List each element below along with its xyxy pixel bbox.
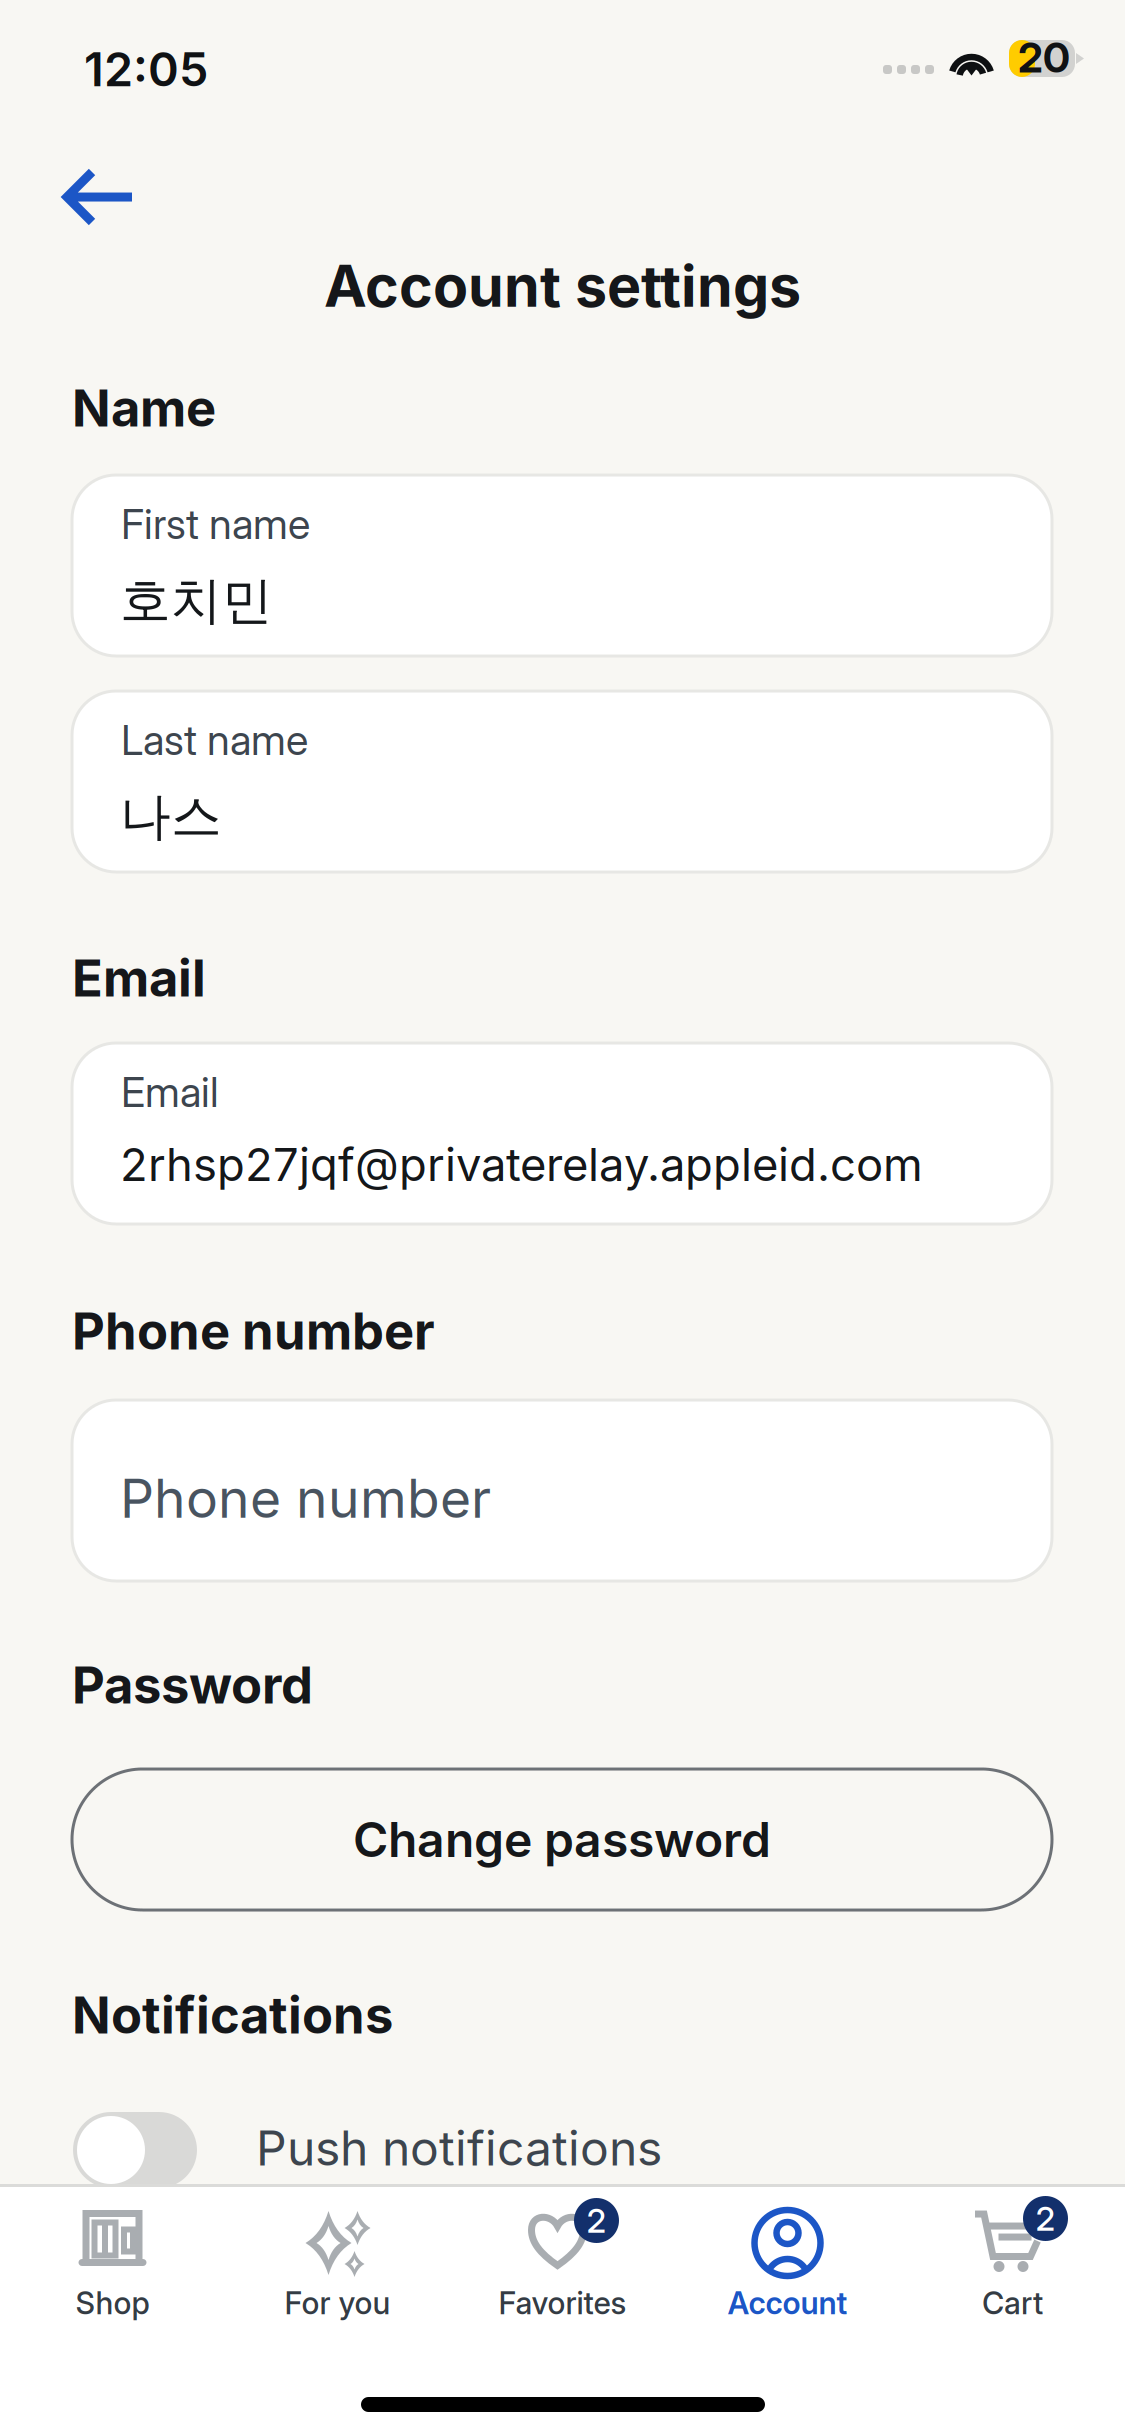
button[interactable]: Phone number bbox=[72, 1400, 1052, 1581]
staticText: 2 bbox=[1035, 2198, 1055, 2239]
staticText: 2rhsp27jqf@privaterelay.appleid.com bbox=[120, 1137, 923, 1192]
button[interactable]: Email bbox=[72, 1043, 1052, 1224]
button[interactable]: Last name bbox=[72, 691, 1052, 872]
staticText: 12:05 bbox=[84, 41, 208, 97]
button[interactable]: Account bbox=[675, 2202, 900, 2332]
staticText: Phone number bbox=[72, 1300, 435, 1362]
button[interactable]: Shop bbox=[0, 2202, 225, 2332]
staticText: 20 bbox=[1018, 32, 1070, 82]
staticText: Cart bbox=[982, 2284, 1043, 2321]
button[interactable]: For you bbox=[225, 2202, 450, 2332]
staticText: 2 bbox=[586, 2200, 606, 2241]
button[interactable]: First name bbox=[72, 475, 1052, 656]
staticText: Phone number bbox=[120, 1466, 491, 1530]
staticText: Last name bbox=[121, 715, 308, 765]
button[interactable]: Push notifications bbox=[73, 2112, 197, 2188]
button[interactable]: Change password bbox=[72, 1769, 1052, 1910]
staticText: First name bbox=[121, 499, 310, 549]
staticText: For you bbox=[284, 2284, 390, 2321]
button[interactable]: Back bbox=[37, 142, 162, 252]
staticText: 나스 bbox=[120, 785, 222, 849]
staticText: Favorites bbox=[498, 2284, 626, 2321]
staticText: Change password bbox=[353, 1810, 771, 1869]
staticText: Name bbox=[72, 377, 216, 439]
staticText: Account settings bbox=[324, 251, 801, 321]
staticText: Email bbox=[121, 1067, 219, 1117]
staticText: Push notifications bbox=[256, 2119, 662, 2177]
staticText: Account bbox=[727, 2284, 847, 2321]
staticText: Password bbox=[72, 1654, 313, 1716]
button[interactable]: 2 bbox=[900, 2202, 1125, 2332]
staticText: 호치민 bbox=[120, 569, 273, 633]
staticText: Shop bbox=[75, 2284, 149, 2321]
button[interactable]: 2 bbox=[450, 2202, 675, 2332]
staticText: Notifications bbox=[72, 1984, 393, 2046]
staticText: Email bbox=[72, 947, 206, 1009]
